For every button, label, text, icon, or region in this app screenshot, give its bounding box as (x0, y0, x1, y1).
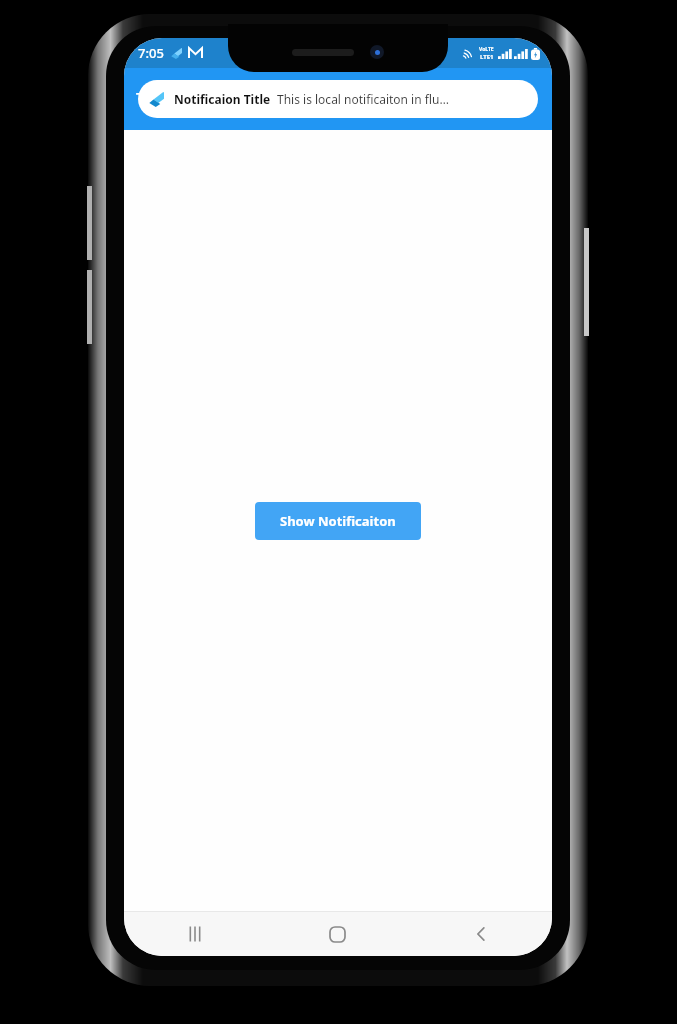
staticText: T (136, 86, 148, 113)
button[interactable]: Back (409, 912, 552, 956)
button[interactable]: Notificaion Title (138, 80, 538, 118)
staticText: Show Notificaiton (280, 512, 396, 530)
button[interactable]: Home (266, 912, 409, 956)
staticText: VoLTE (479, 46, 494, 53)
staticText: LTE1 (480, 53, 494, 61)
staticText: Notificaion Title (174, 91, 271, 107)
button[interactable]: Recent apps (124, 912, 266, 956)
button[interactable]: Show Notificaiton (255, 502, 421, 540)
staticText: This is local notificaiton in flu… (277, 91, 449, 107)
staticText: 7:05 (138, 44, 164, 62)
